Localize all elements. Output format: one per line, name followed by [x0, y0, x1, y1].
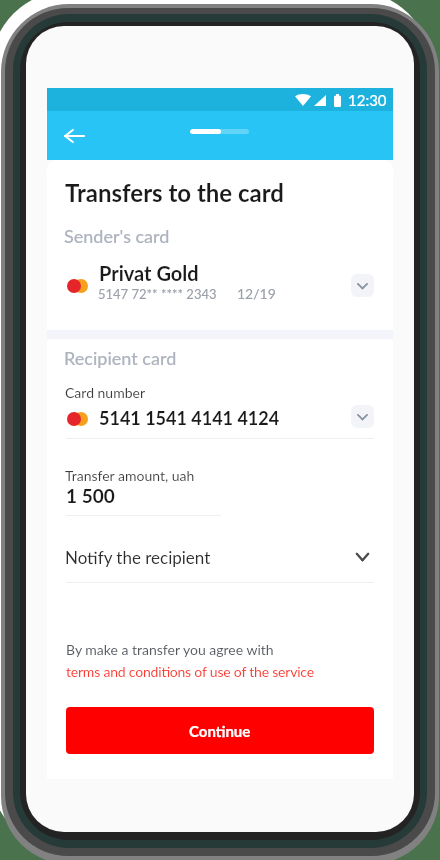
- staticText: By make a transfer you agree with: [66, 641, 274, 658]
- button[interactable]: Back: [63, 124, 86, 147]
- button[interactable]: [47, 262, 393, 308]
- staticText: Transfer amount, uah: [65, 467, 195, 484]
- staticText: Recipient card: [64, 347, 177, 369]
- staticText: 5147 72** **** 2343: [98, 286, 217, 302]
- button[interactable]: Expand: [351, 274, 374, 297]
- button[interactable]: [47, 545, 393, 575]
- button[interactable]: terms and conditions of use of the servi…: [26, 26, 274, 43]
- staticText: Card number: [65, 384, 146, 401]
- staticText: Privat Gold: [99, 261, 199, 285]
- staticText: Sender's card: [64, 225, 170, 247]
- staticText: Notify the recipient: [65, 547, 211, 567]
- staticText: 12/19: [237, 285, 276, 302]
- staticText: Continue: [189, 722, 251, 740]
- staticText: Transfers to the card: [65, 178, 284, 207]
- button[interactable]: Continue: [66, 707, 374, 754]
- staticText: 5141 1541 4141 4124: [99, 407, 280, 429]
- staticText: 12:30: [348, 91, 387, 109]
- button[interactable]: Expand: [351, 405, 374, 428]
- staticText: 1 500: [66, 484, 115, 507]
- button[interactable]: [47, 405, 393, 435]
